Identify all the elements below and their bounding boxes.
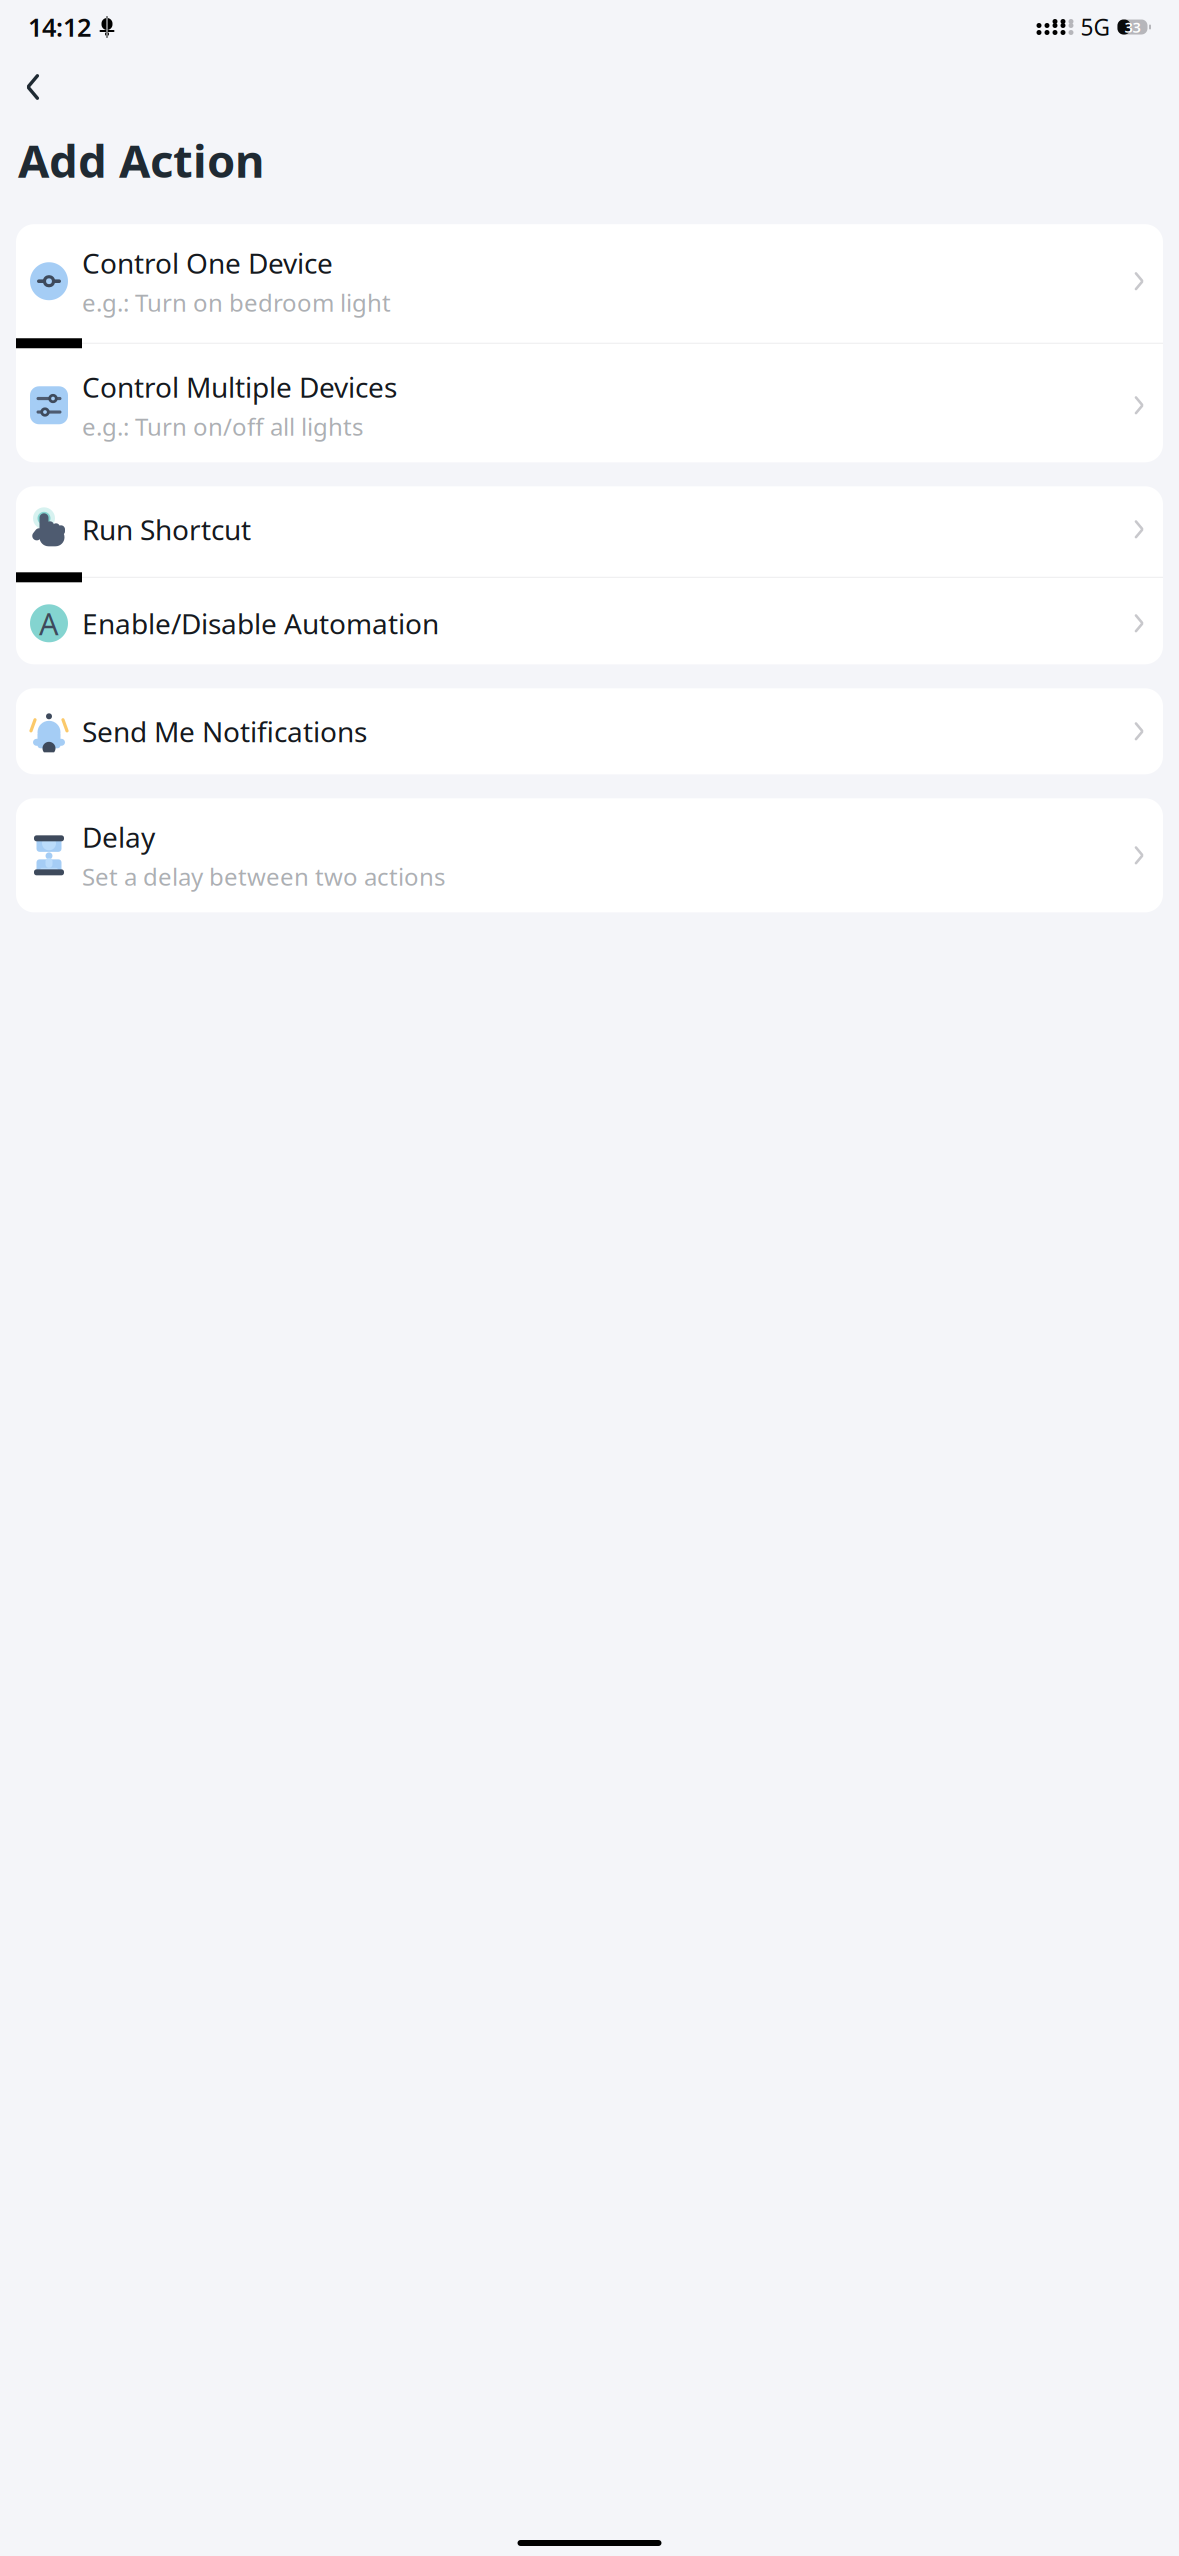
button[interactable]: Delay <box>16 798 1163 912</box>
staticText: e.g.: Turn on/off all lights <box>82 410 363 442</box>
button[interactable]: Control Multiple Devices <box>16 348 1163 462</box>
staticText: Control Multiple Devices <box>82 368 397 405</box>
staticText: 33 <box>1124 17 1140 37</box>
staticText: Delay <box>82 818 155 855</box>
staticText: 14:12 <box>28 10 91 44</box>
staticText: Send Me Notifications <box>82 713 367 750</box>
staticText: 5G <box>1080 12 1110 42</box>
button[interactable]: Control One Device <box>16 224 1163 338</box>
staticText: Set a delay between two actions <box>82 860 445 892</box>
staticText: e.g.: Turn on bedroom light <box>82 286 391 318</box>
staticText: A <box>39 603 59 644</box>
button[interactable]: Run Shortcut <box>16 486 1163 572</box>
staticText: Add Action <box>18 130 264 190</box>
button[interactable]: Back <box>8 64 58 110</box>
staticText: Enable/Disable Automation <box>82 605 439 642</box>
staticText: Run Shortcut <box>82 511 251 548</box>
button[interactable]: Send Me Notifications <box>16 688 1163 774</box>
button[interactable]: A <box>16 582 1163 664</box>
staticText: Control One Device <box>82 244 333 281</box>
